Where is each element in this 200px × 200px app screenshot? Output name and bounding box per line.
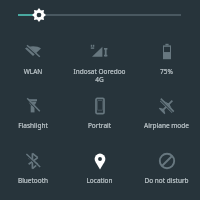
button[interactable]: Bluetooth	[0, 145, 66, 200]
staticText: Location	[66, 176, 133, 185]
staticText: Indosat Ooredoo 4G	[66, 67, 133, 84]
staticText: Airplane mode	[133, 121, 200, 130]
button[interactable]: Location	[66, 145, 133, 200]
staticText: WLAN	[0, 67, 66, 76]
button[interactable]: WLAN	[0, 36, 66, 90]
button[interactable]: Brightness	[0, 0, 200, 34]
button[interactable]: Airplane mode	[133, 90, 200, 145]
staticText: Flashlight	[0, 121, 66, 130]
button[interactable]: Do not disturb	[133, 145, 200, 200]
button[interactable]: Portrait	[66, 90, 133, 145]
staticText: 75%	[133, 67, 200, 76]
button[interactable]: Flashlight	[0, 90, 66, 145]
staticText: Do not disturb	[133, 176, 200, 185]
button[interactable]: Indosat Ooredoo 4G	[66, 36, 133, 90]
staticText: Portrait	[66, 121, 133, 130]
button[interactable]: 75%	[133, 36, 200, 90]
staticText: Bluetooth	[0, 176, 66, 185]
